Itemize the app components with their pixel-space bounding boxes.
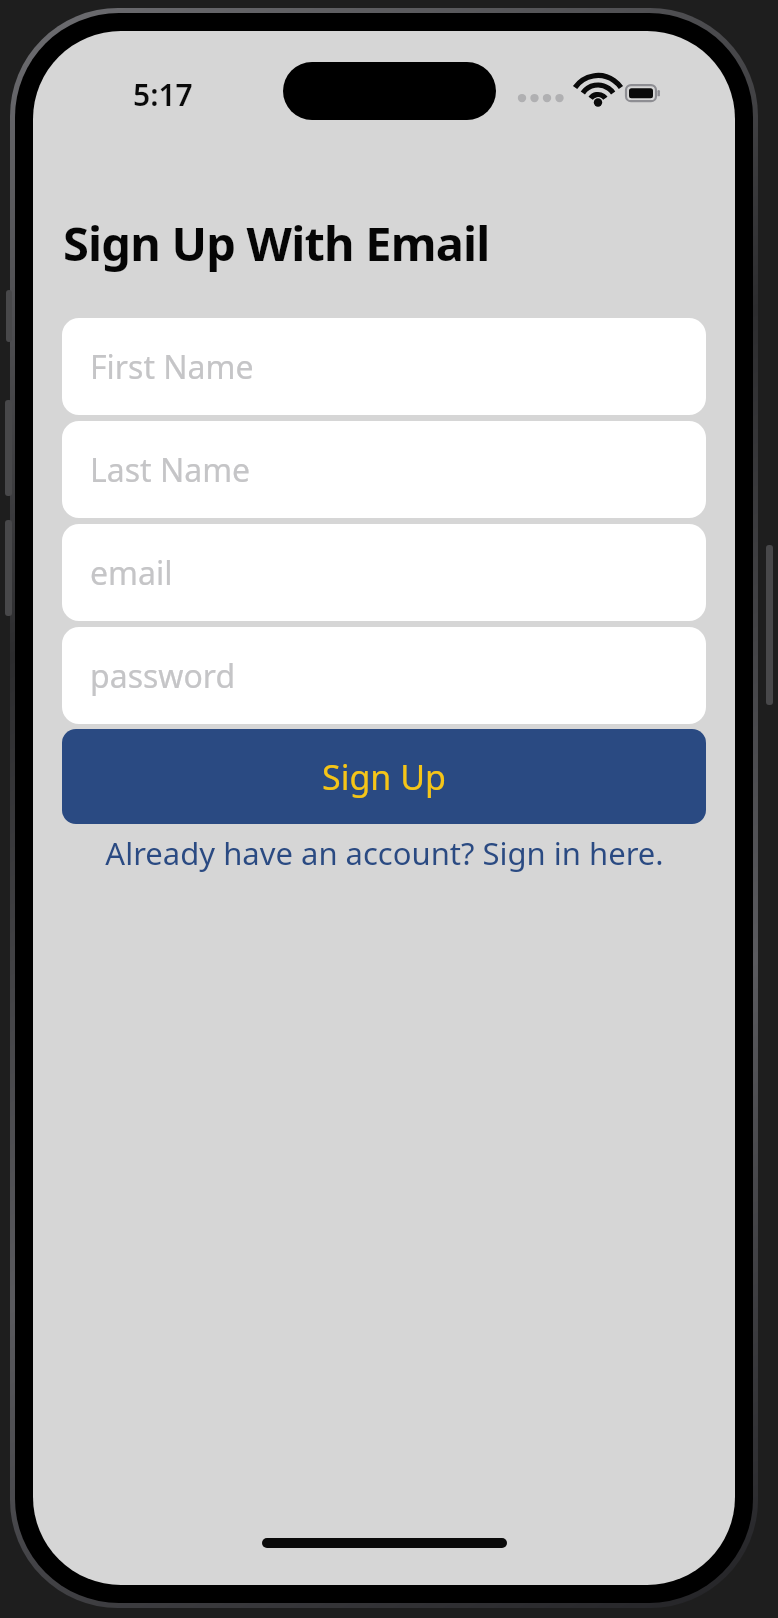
- button[interactable]: Sign Up: [62, 729, 706, 824]
- staticText: 5:17: [133, 74, 193, 115]
- button[interactable]: password: [62, 627, 706, 724]
- staticText: email: [90, 551, 173, 595]
- button[interactable]: First Name: [62, 318, 706, 415]
- staticText: Last Name: [90, 448, 251, 492]
- staticText: password: [90, 654, 236, 698]
- button[interactable]: Already have an account? Sign in here.: [33, 832, 735, 874]
- staticText: Sign Up With Email: [63, 211, 490, 275]
- staticText: Sign Up: [322, 754, 446, 800]
- staticText: First Name: [90, 345, 254, 389]
- staticText: Already have an account? Sign in here.: [105, 832, 664, 874]
- button[interactable]: Last Name: [62, 421, 706, 518]
- button[interactable]: email: [62, 524, 706, 621]
